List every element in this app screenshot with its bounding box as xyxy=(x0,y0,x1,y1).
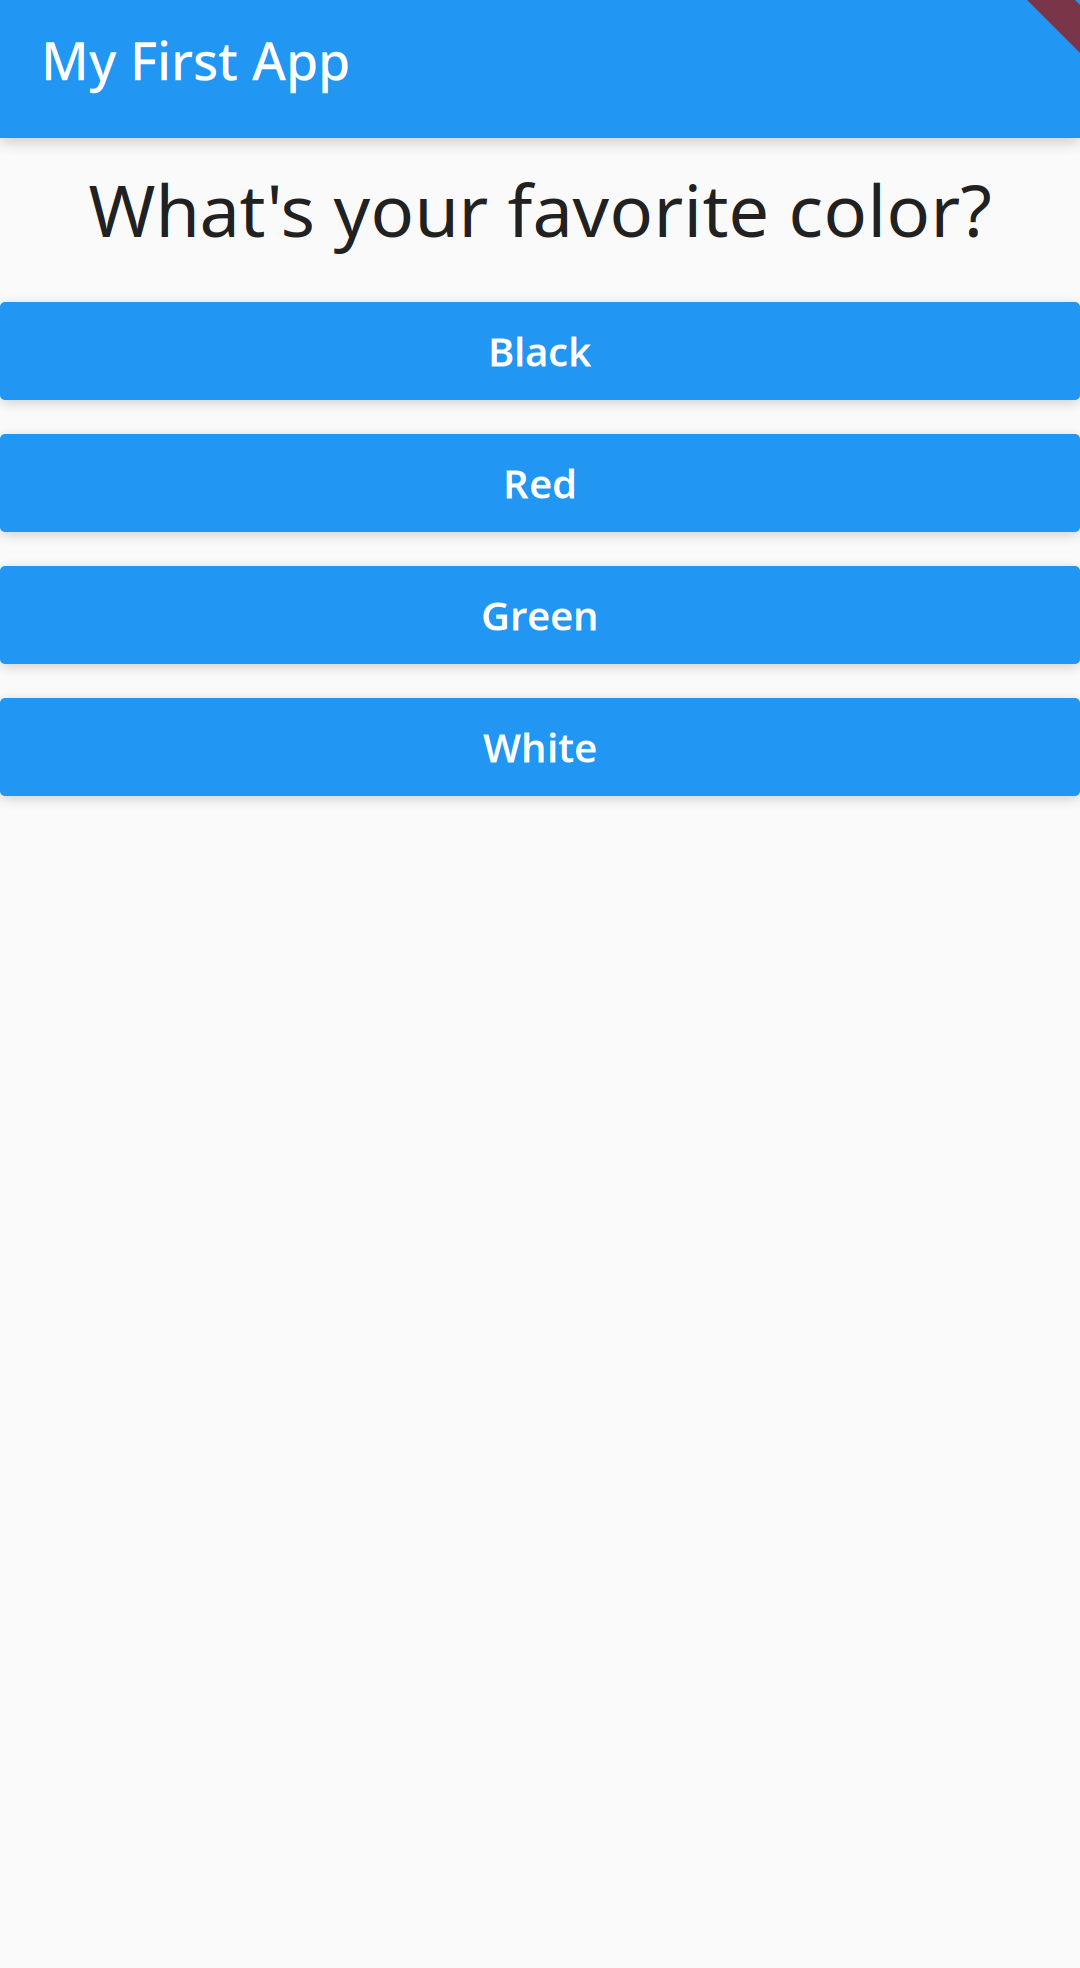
button[interactable]: Red xyxy=(0,434,1080,532)
staticText: White xyxy=(483,720,597,773)
button[interactable]: Black xyxy=(0,302,1080,400)
staticText: My First App xyxy=(41,25,350,95)
staticText: Red xyxy=(503,456,577,509)
button[interactable]: White xyxy=(0,698,1080,796)
staticText: Black xyxy=(488,324,592,377)
staticText: Green xyxy=(481,588,599,641)
button[interactable]: Green xyxy=(0,566,1080,664)
staticText: What's your favorite color? xyxy=(88,161,991,257)
